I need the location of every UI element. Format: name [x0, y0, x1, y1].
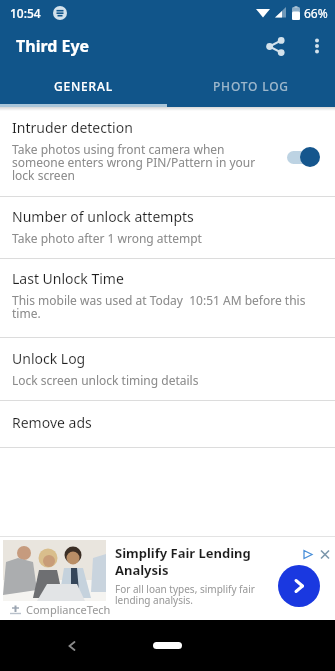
- staticText: PHOTO LOG: [213, 78, 289, 94]
- staticText: This mobile was used at Today 10:51 AM b…: [12, 292, 306, 322]
- staticText: Take photos using front camera when some…: [12, 141, 256, 184]
- button[interactable]: [278, 565, 320, 607]
- button[interactable]: GENERAL: [0, 72, 167, 100]
- button[interactable]: Number of unlock attempts: [0, 197, 335, 258]
- staticText: Number of unlock attempts: [12, 207, 194, 226]
- staticText: GENERAL: [54, 78, 113, 94]
- button[interactable]: Remove ads: [0, 401, 335, 447]
- staticText: Take photo after 1 wrong attempt: [12, 230, 202, 246]
- staticText: Third Eye: [16, 35, 90, 57]
- staticText: Intruder detection: [12, 118, 133, 137]
- button[interactable]: [66, 640, 78, 652]
- staticText: Unlock Log: [12, 349, 86, 368]
- staticText: Lock screen unlock timing details: [12, 372, 199, 388]
- button[interactable]: PHOTO LOG: [167, 72, 335, 100]
- staticText: 10:54: [10, 5, 41, 21]
- staticText: For all loan types, simplify fair lendin…: [115, 582, 255, 607]
- button[interactable]: Last Unlock Time: [0, 259, 335, 337]
- button[interactable]: [303, 32, 331, 60]
- staticText: Last Unlock Time: [12, 269, 124, 288]
- button[interactable]: Unlock Log: [0, 338, 335, 400]
- button[interactable]: [257, 28, 293, 64]
- button[interactable]: Intruder detection: [0, 111, 335, 196]
- staticText: ComplianceTech: [26, 602, 111, 617]
- staticText: Simplify Fair Lending Analysis: [115, 544, 251, 579]
- staticText: Remove ads: [12, 413, 92, 432]
- button[interactable]: ComplianceTech: [0, 536, 335, 620]
- button[interactable]: [286, 147, 320, 167]
- staticText: 66%: [304, 5, 328, 21]
- button[interactable]: [153, 642, 182, 649]
